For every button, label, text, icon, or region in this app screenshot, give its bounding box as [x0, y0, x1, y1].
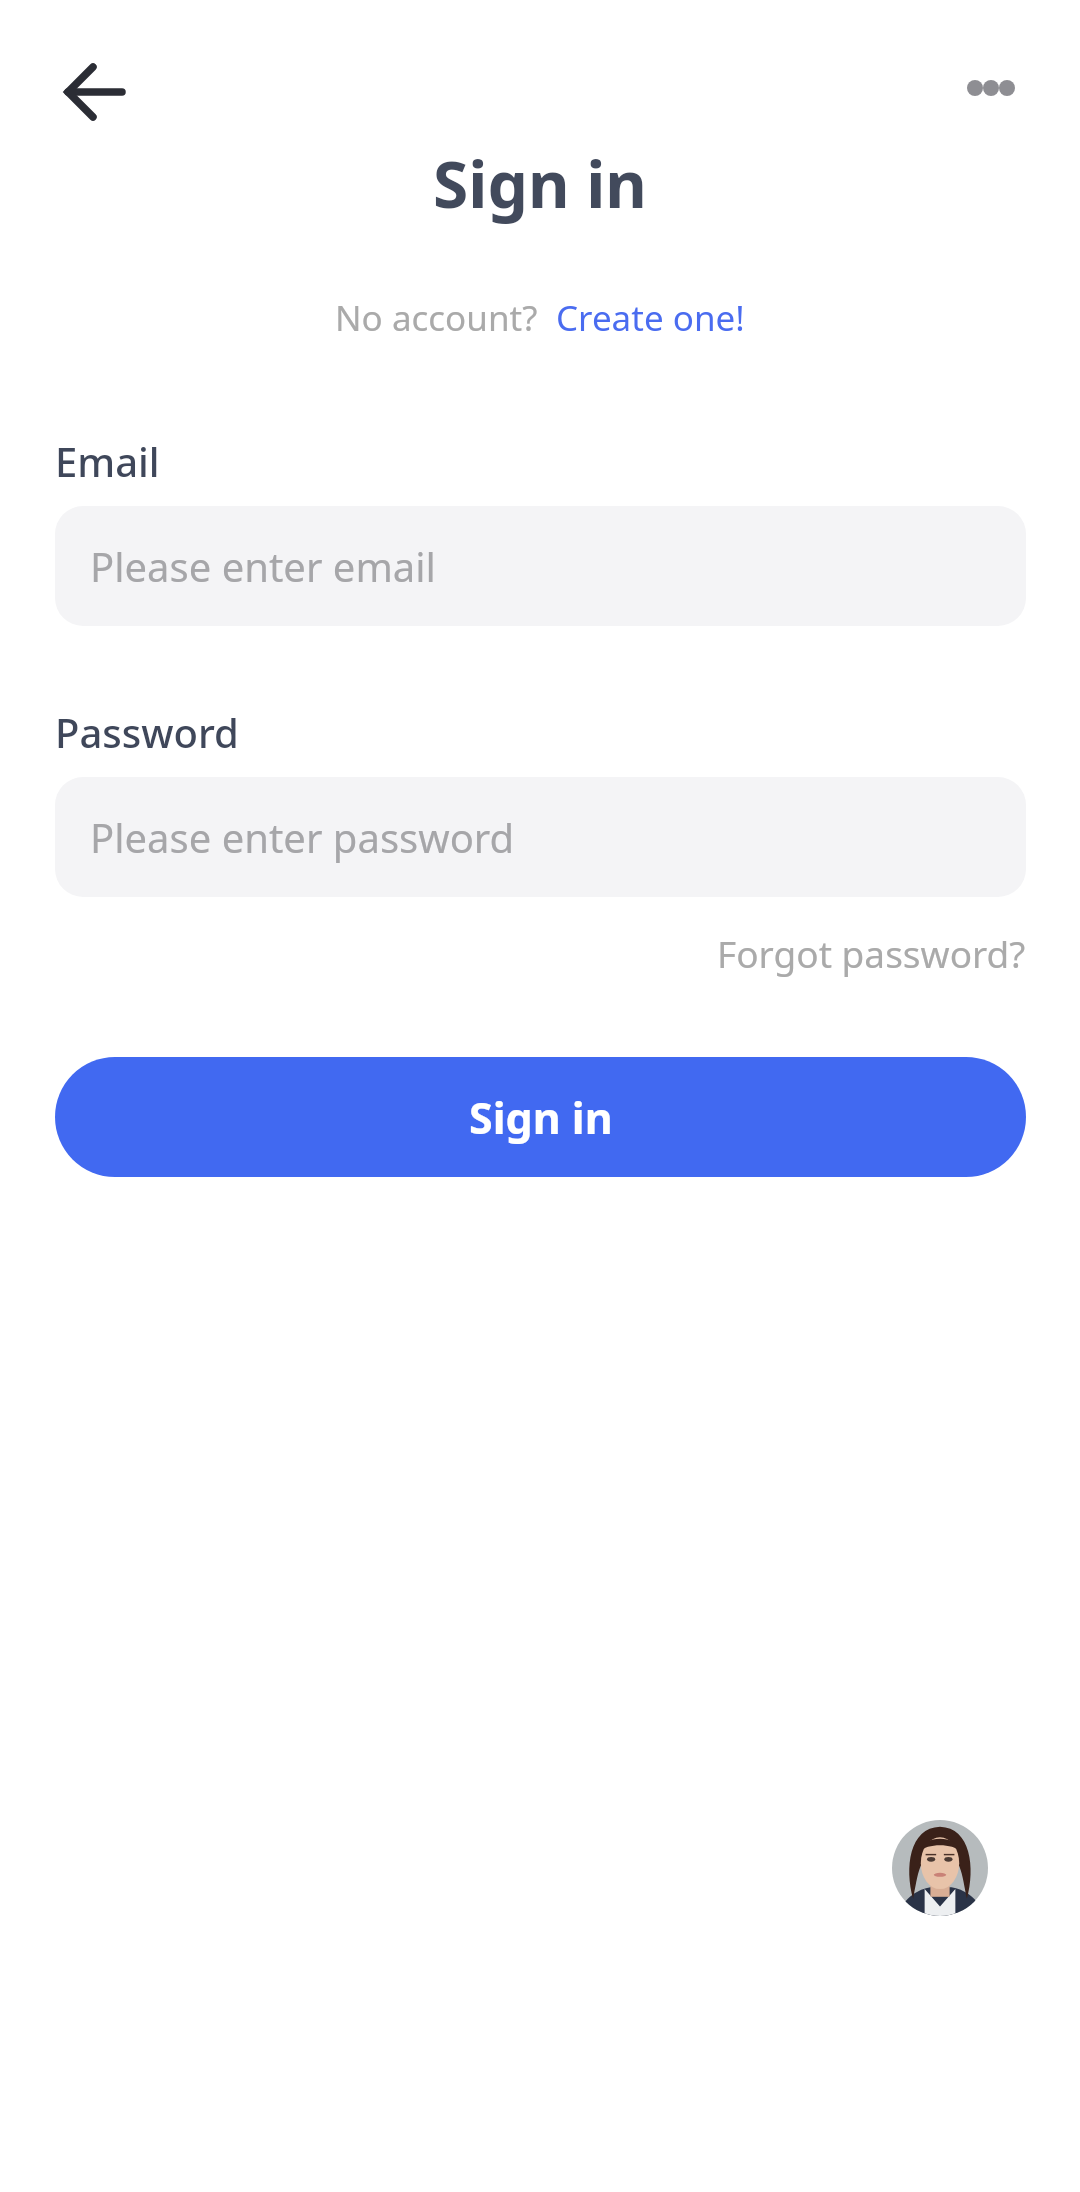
- staticText: Email: [55, 434, 160, 488]
- staticText: Sign in: [469, 1088, 613, 1147]
- staticText: Password: [55, 705, 239, 759]
- button[interactable]: Please enter password: [55, 777, 1026, 897]
- staticText: No account?: [335, 294, 538, 342]
- staticText: Sign in: [433, 140, 647, 227]
- staticText: Please enter email: [90, 539, 436, 593]
- button[interactable]: Sign in: [55, 1057, 1026, 1177]
- button[interactable]: Profile: [885, 1813, 995, 1923]
- button[interactable]: Back: [45, 42, 145, 142]
- staticText: Please enter password: [90, 810, 515, 864]
- button[interactable]: Please enter email: [55, 506, 1026, 626]
- staticText: Create one!: [556, 294, 745, 342]
- button[interactable]: More options: [941, 48, 1041, 128]
- staticText: Forgot password?: [717, 928, 1026, 978]
- button[interactable]: Forgot password?: [690, 920, 1026, 986]
- button[interactable]: Create one!: [556, 294, 745, 342]
